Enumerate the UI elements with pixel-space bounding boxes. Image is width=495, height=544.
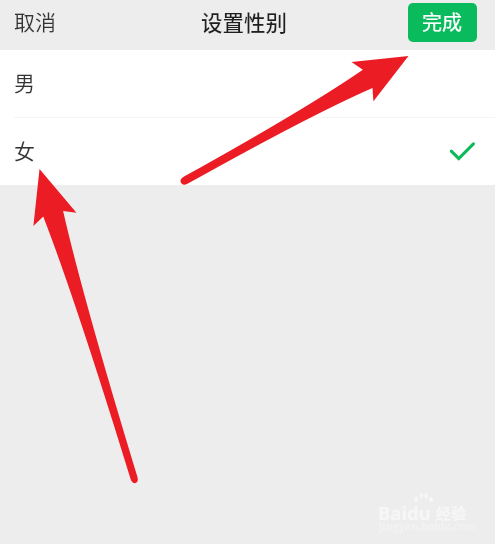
other: Selected [450,140,474,164]
button[interactable]: 完成 [408,3,477,42]
staticText: 取消 [14,6,56,36]
staticText: 男 [14,67,35,97]
staticText: 完成 [422,7,462,36]
staticText: 女 [14,135,35,165]
staticText: Baidu [378,500,431,525]
staticText: 经验 [436,502,467,524]
button[interactable]: 男 [0,50,495,117]
button[interactable]: 取消 [14,6,56,36]
staticText: 设置性别 [201,6,288,37]
button[interactable]: 女 [0,118,495,185]
